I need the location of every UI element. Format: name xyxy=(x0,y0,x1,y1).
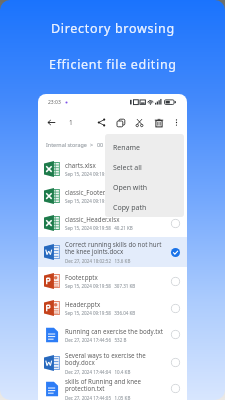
staticText: Footer.pptx xyxy=(65,273,98,281)
staticText: Directory browsing xyxy=(51,20,175,37)
button[interactable]: Share xyxy=(95,116,108,129)
button[interactable]: Back xyxy=(45,116,58,129)
button[interactable]: Select item xyxy=(170,247,181,258)
staticText: Dec 27, 2024 17:44:04 10.4 KB xyxy=(65,369,131,375)
staticText: Sep 15, 2024 09:19:58 40.21 KB xyxy=(65,225,133,231)
staticText: Dec 27, 2024 17:44:56 532 B xyxy=(65,337,127,343)
staticText: 1 xyxy=(69,118,73,127)
button[interactable]: Copy xyxy=(114,116,127,129)
staticText: classic_Header.xlsx xyxy=(65,215,120,223)
button[interactable]: Delete xyxy=(152,116,165,129)
button[interactable]: Running can exercise the body.txt xyxy=(38,321,187,348)
staticText: Sep 15, 2024 09:19:58 40.21 KB xyxy=(65,198,133,204)
staticText: Sep 15, 2024 09:19:58 307.31 KB xyxy=(65,283,136,289)
staticText: 00 xyxy=(97,141,104,148)
button[interactable]: Rename xyxy=(105,138,184,158)
staticText: Several ways to exercise the body.docx xyxy=(65,351,166,367)
staticText: Rename xyxy=(113,143,141,153)
button[interactable]: Footer.pptx xyxy=(38,267,187,295)
button[interactable]: skills of Running and knee protection.tx… xyxy=(38,377,187,400)
staticText: Open with xyxy=(113,183,148,193)
staticText: Correct running skills do not hurt the k… xyxy=(65,240,166,256)
button[interactable]: Select item xyxy=(170,329,181,340)
staticText: Dec 27, 2024 17:44:05 1.05 KB xyxy=(65,395,131,400)
staticText: Running can exercise the body.txt xyxy=(65,327,163,335)
staticText: Copy path xyxy=(113,203,147,213)
staticText: skills of Running and knee protection.tx… xyxy=(65,377,166,393)
staticText: 23:03 xyxy=(48,99,61,106)
button[interactable]: Select item xyxy=(170,276,181,287)
staticText: Header.pptx xyxy=(65,300,101,308)
button[interactable]: Cut xyxy=(133,116,146,129)
button[interactable]: Copy path xyxy=(105,198,184,217)
button[interactable]: Select item xyxy=(170,218,181,229)
button[interactable]: classic_Header.xlsx xyxy=(38,209,187,237)
button[interactable]: Select all xyxy=(105,158,184,178)
button[interactable]: charts.xlsx xyxy=(38,155,187,182)
button[interactable]: Header.pptx xyxy=(38,295,187,321)
button[interactable]: Select item xyxy=(170,303,181,314)
staticText: Sep 15, 2024 09:19:58 32.05 KB xyxy=(65,171,133,177)
button[interactable]: More options xyxy=(170,116,183,129)
staticText: Internal storage xyxy=(46,141,87,148)
staticText: > xyxy=(90,141,94,148)
button[interactable]: Several ways to exercise the body.docx xyxy=(38,348,187,377)
button[interactable]: Correct running skills do not hurt the k… xyxy=(38,237,187,267)
staticText: charts.xlsx xyxy=(65,161,96,169)
button[interactable]: classic_Footer.xlsx xyxy=(38,182,187,209)
staticText: Select all xyxy=(113,163,142,173)
staticText: Dec 27, 2024 18:02:52 13.6 KB xyxy=(65,258,131,264)
staticText: Efficient file editing xyxy=(49,56,177,73)
button[interactable]: Select item xyxy=(170,357,181,368)
button[interactable]: Open with xyxy=(105,178,184,198)
staticText: Sep 15, 2024 09:19:58 336.04 KB xyxy=(65,310,136,316)
staticText: classic_Footer.xlsx xyxy=(65,188,118,196)
button[interactable]: Select item xyxy=(170,383,181,394)
